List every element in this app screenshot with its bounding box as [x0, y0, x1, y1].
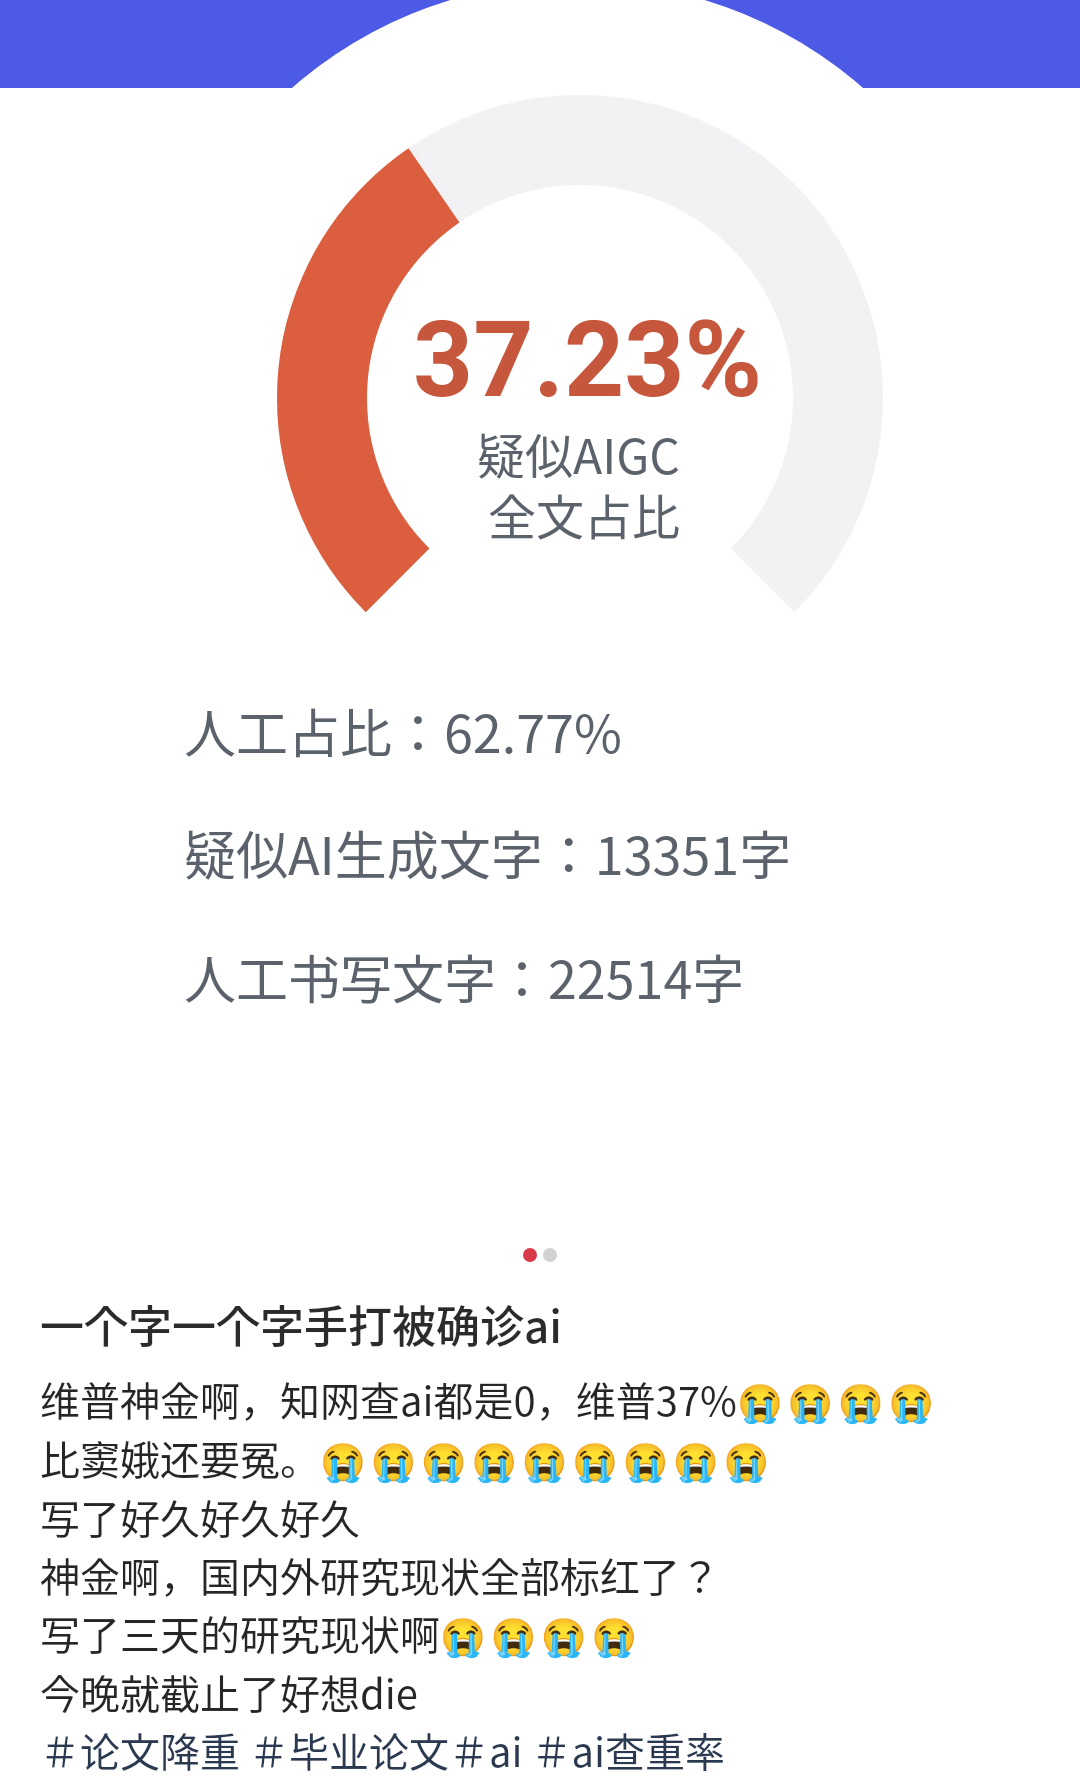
button[interactable]: AIGC 检测结果图片 — [0, 0, 1080, 1275]
staticText: 疑似AI生成文字：13351字 — [184, 815, 792, 890]
staticText: 全文占比 — [488, 479, 681, 549]
staticText: 37.23% — [413, 299, 763, 422]
staticText: 人工占比：62.77% — [184, 693, 622, 768]
button[interactable]: 第 1 页，共 2 页 — [523, 1248, 557, 1262]
staticText: 人工书写文字：22514字 — [184, 939, 745, 1014]
staticText: 疑似AIGC — [477, 418, 680, 488]
button[interactable]: 一个字一个字手打被确诊ai — [40, 1292, 562, 1356]
button[interactable]: 维普神金啊，知网查ai都是0，维普37%😭😭😭😭 比窦娥还要冤。😭😭😭😭😭😭😭😭… — [40, 1370, 939, 1779]
